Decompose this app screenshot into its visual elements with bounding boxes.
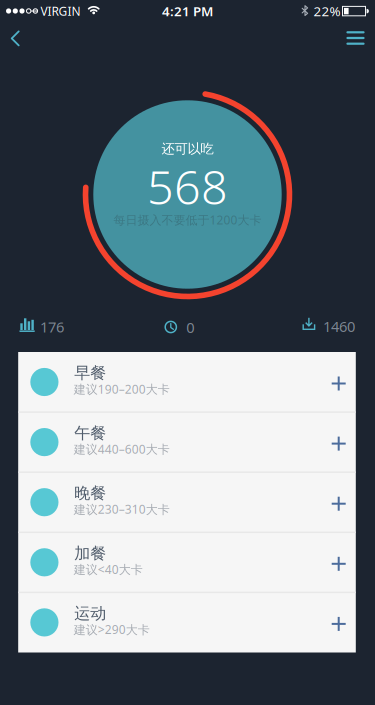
button[interactable]: 运动 bbox=[18, 593, 356, 651]
staticText: 建议230–310大卡 bbox=[74, 501, 170, 517]
staticText: 1460 bbox=[323, 317, 355, 336]
staticText: 建议>290大卡 bbox=[74, 621, 150, 637]
staticText: 运动 bbox=[74, 604, 106, 623]
staticText: 晚餐 bbox=[74, 483, 106, 503]
button[interactable]: Menu bbox=[333, 16, 375, 60]
button[interactable]: 午餐 bbox=[18, 413, 356, 471]
staticText: 建议<40大卡 bbox=[74, 561, 143, 577]
button[interactable]: 添加运动 bbox=[324, 609, 354, 639]
staticText: 还可以吃 bbox=[161, 141, 213, 157]
staticText: 0 bbox=[186, 317, 194, 337]
button[interactable]: 加餐 bbox=[18, 533, 356, 591]
staticText: VIRGIN bbox=[40, 3, 80, 19]
staticText: 早餐 bbox=[74, 363, 106, 383]
button[interactable]: 添加晚餐 bbox=[324, 489, 354, 519]
button[interactable]: 添加加餐 bbox=[324, 549, 354, 579]
staticText: 22% bbox=[313, 2, 340, 20]
staticText: 建议440–600大卡 bbox=[74, 441, 170, 457]
staticText: 建议190–200大卡 bbox=[74, 381, 170, 397]
button[interactable]: 添加早餐 bbox=[324, 368, 354, 398]
staticText: 4:21 PM bbox=[162, 2, 213, 20]
staticText: 午餐 bbox=[74, 423, 106, 443]
button[interactable]: 添加午餐 bbox=[324, 429, 354, 459]
staticText: 568 bbox=[147, 155, 228, 217]
button[interactable]: Back bbox=[0, 16, 37, 60]
staticText: 176 bbox=[40, 317, 64, 336]
button[interactable]: 早餐 bbox=[18, 353, 356, 411]
staticText: 每日摄入不要低于1200大卡 bbox=[113, 212, 261, 228]
staticText: 加餐 bbox=[74, 543, 106, 563]
button[interactable]: 晚餐 bbox=[18, 473, 356, 531]
